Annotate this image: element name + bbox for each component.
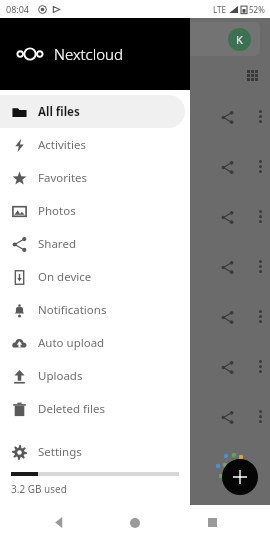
button[interactable]: Recents [194, 505, 230, 540]
button[interactable]: More options [250, 106, 270, 126]
button[interactable]: More options [250, 206, 270, 226]
button[interactable]: More options [250, 306, 270, 326]
button[interactable]: On device [0, 260, 185, 293]
staticText: Activities [38, 137, 86, 153]
staticText: 08:04 [6, 3, 30, 15]
button[interactable]: Favorites [0, 161, 185, 194]
button[interactable]: Share [216, 206, 238, 228]
staticText: K [236, 32, 243, 47]
staticText: 52% [249, 4, 265, 15]
staticText: Photos [38, 203, 76, 219]
button[interactable]: Notifications [0, 293, 185, 326]
button[interactable]: Auto upload [0, 326, 185, 359]
button[interactable]: Add [222, 459, 258, 495]
button[interactable]: Share [216, 306, 238, 328]
staticText: On device [38, 269, 92, 285]
button[interactable]: More options [250, 256, 270, 276]
button[interactable]: Nextcloud [0, 18, 190, 90]
button[interactable]: Share [216, 156, 238, 178]
staticText: LTE [213, 4, 226, 15]
button[interactable]: Share [216, 406, 238, 428]
staticText: 3.2 GB used [11, 482, 67, 496]
button[interactable]: Share [216, 106, 238, 128]
staticText: Notifications [38, 302, 107, 318]
staticText: Settings [38, 444, 82, 460]
button[interactable]: Switch view [243, 66, 261, 84]
button[interactable]: Activities [0, 128, 185, 161]
button[interactable]: Share [216, 356, 238, 378]
button[interactable]: Settings [0, 435, 185, 468]
staticText: Nextcloud [54, 44, 123, 64]
button[interactable]: Share [216, 256, 238, 278]
button[interactable]: Uploads [0, 359, 185, 392]
button[interactable]: Home [117, 505, 153, 540]
button[interactable]: More options [250, 156, 270, 176]
button[interactable]: More options [250, 406, 270, 426]
button[interactable]: All files [0, 95, 185, 128]
button[interactable]: Back [41, 505, 77, 540]
button[interactable]: Deleted files [0, 392, 185, 425]
staticText: Uploads [38, 368, 83, 384]
staticText: Auto upload [38, 335, 105, 351]
staticText: Deleted files [38, 401, 105, 417]
button[interactable]: Photos [0, 194, 185, 227]
button[interactable]: Account [228, 28, 251, 51]
button[interactable]: More options [250, 356, 270, 376]
staticText: Shared [38, 236, 76, 252]
staticText: All files [38, 104, 80, 120]
staticText: Favorites [38, 170, 88, 186]
button[interactable]: Shared [0, 227, 185, 260]
